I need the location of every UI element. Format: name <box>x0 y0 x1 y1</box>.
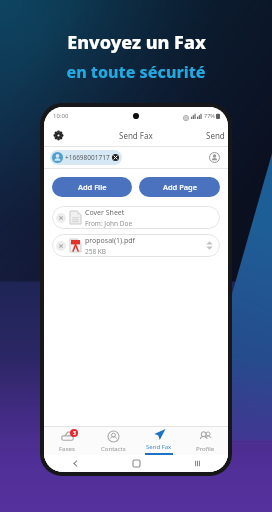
staticText: proposal(1).pdf <box>85 236 136 246</box>
staticText: From: John Doe <box>85 219 133 228</box>
staticText: Faxes <box>59 445 75 453</box>
staticText: en toute sécurité <box>66 61 206 83</box>
button[interactable]: Remove proposal(1).pdf <box>52 234 220 257</box>
staticText: Contacts <box>101 445 126 453</box>
button[interactable]: Contacts <box>90 427 136 455</box>
staticText: Send <box>206 130 225 141</box>
other: Remove recipient <box>112 154 119 161</box>
other: Reorder <box>205 240 214 251</box>
staticText: Cover Sheet <box>85 208 125 218</box>
staticText: Send Fax <box>119 130 153 141</box>
staticText: Envoyez un Fax <box>67 30 206 55</box>
button[interactable]: Send Fax <box>136 427 182 455</box>
button[interactable]: 3 <box>44 427 90 455</box>
staticText: 77% <box>204 112 215 119</box>
button[interactable]: Add File <box>52 177 132 197</box>
button[interactable]: Remove Cover Sheet <box>52 206 220 229</box>
staticText: 3 <box>73 430 76 437</box>
staticText: Send Fax <box>146 443 172 451</box>
button[interactable]: Choose contact <box>208 151 221 164</box>
button[interactable]: Back <box>44 455 106 472</box>
button[interactable]: Recents <box>167 455 228 472</box>
staticText: Profile <box>196 445 215 453</box>
staticText: Add Page <box>163 182 197 192</box>
staticText: Add File <box>78 182 107 192</box>
button[interactable]: Send <box>206 130 228 141</box>
other: Remove proposal(1).pdf <box>56 241 66 251</box>
staticText: +16698001717 <box>65 153 110 162</box>
staticText: 10:00 <box>53 112 69 120</box>
button[interactable]: Home <box>106 455 167 472</box>
other: Remove Cover Sheet <box>56 213 66 223</box>
button[interactable]: Add Page <box>139 177 220 197</box>
button[interactable]: Profile <box>182 427 228 455</box>
button[interactable]: +16698001717 <box>50 150 122 165</box>
staticText: 258 KB <box>85 247 107 256</box>
button[interactable]: Settings <box>51 128 65 142</box>
